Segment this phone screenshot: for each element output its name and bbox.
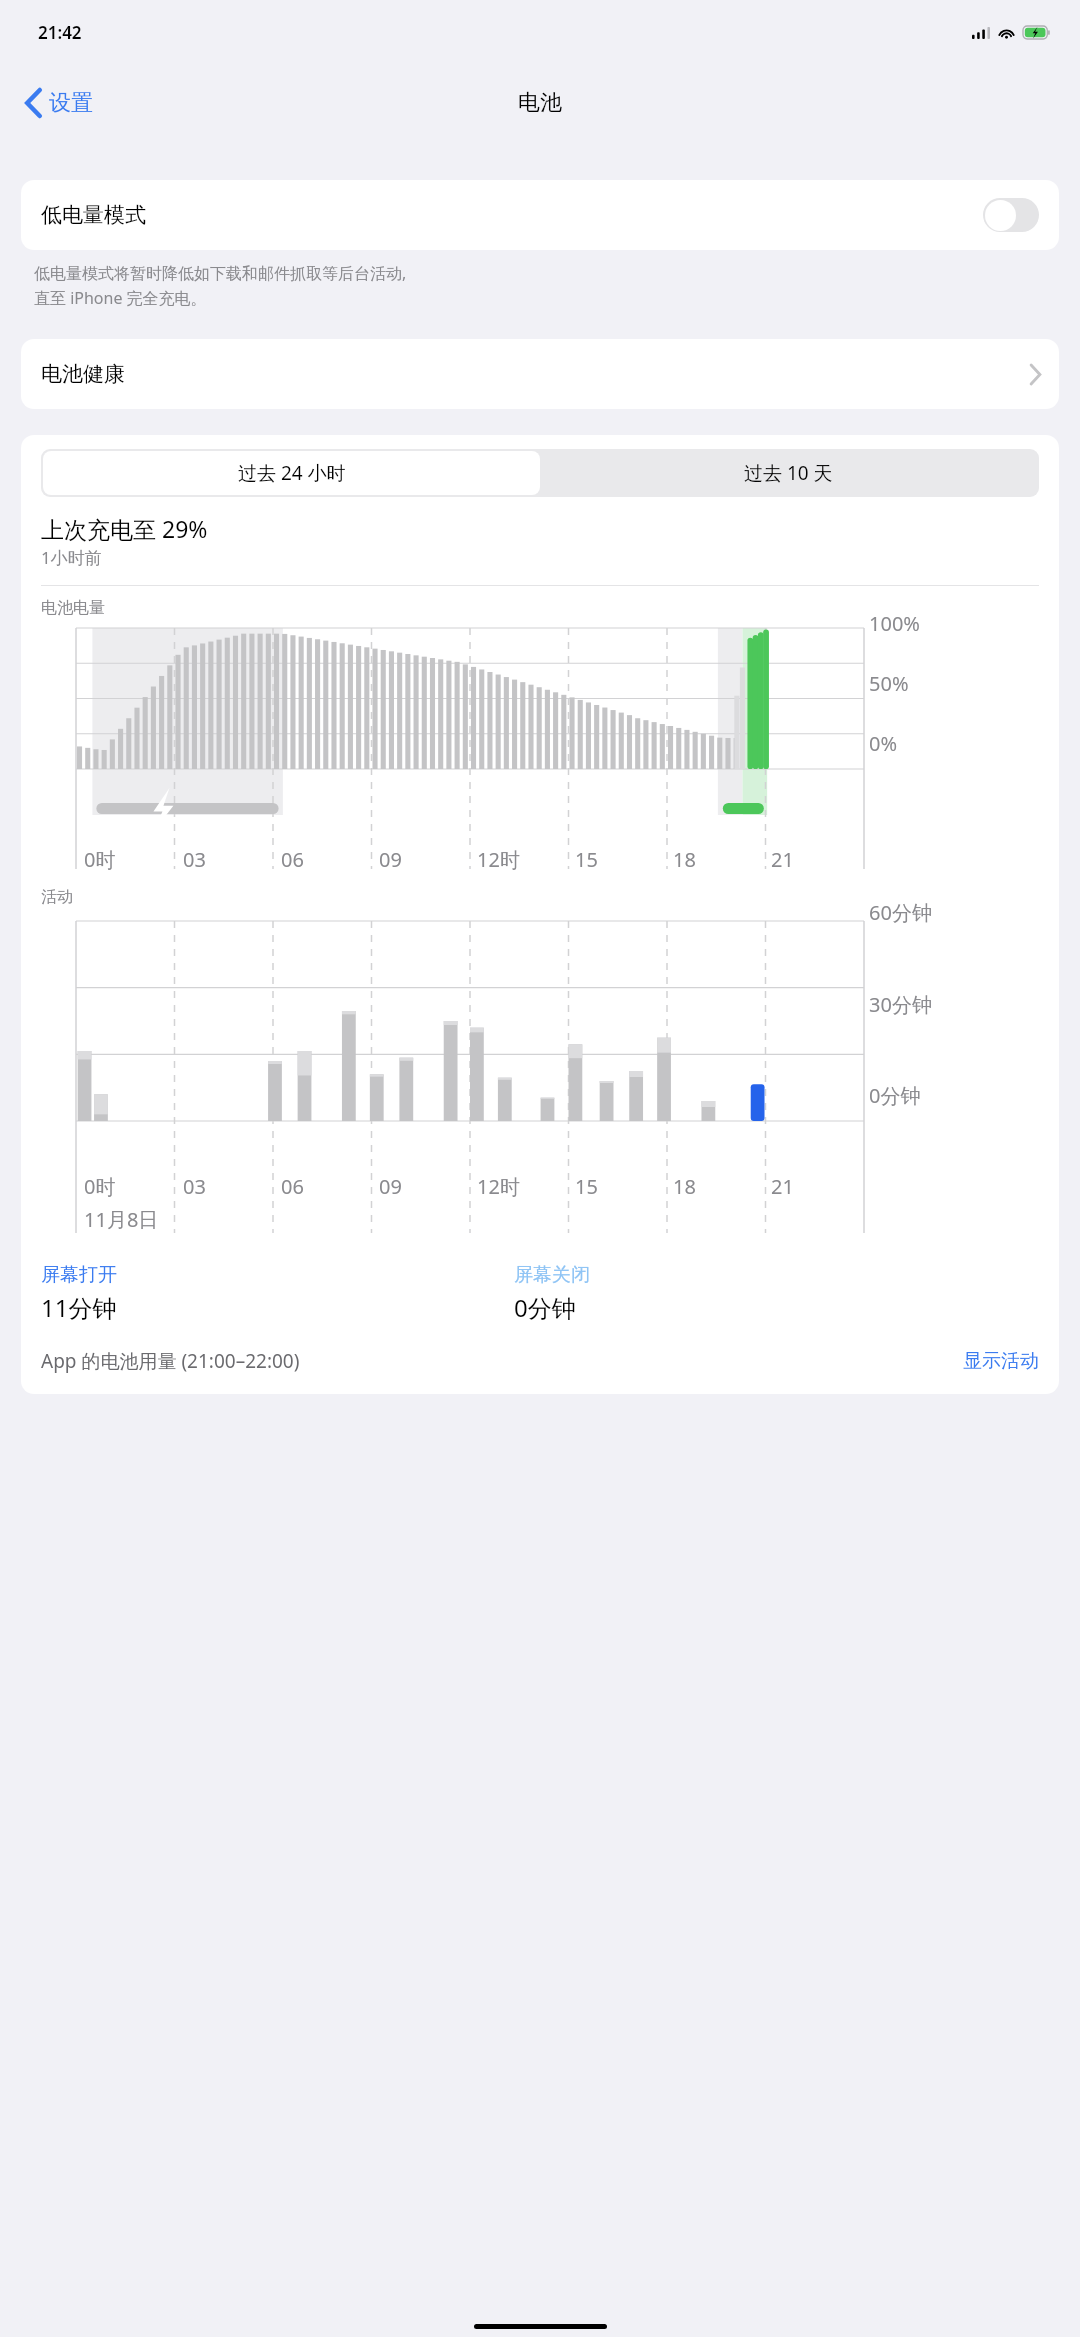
staticText: 21 <box>771 1173 794 1200</box>
staticText: 21 <box>771 846 794 873</box>
staticText: App 的电池用量 (21:00–22:00) <box>41 1348 300 1374</box>
staticText: 1小时前 <box>41 546 102 569</box>
button[interactable]: 屏幕打开 <box>41 1263 514 1324</box>
staticText: 屏幕关闭 <box>514 1263 590 1287</box>
button[interactable]: 低电量模式 <box>21 180 1059 250</box>
staticText: 活动 <box>41 887 73 907</box>
staticText: 过去 10 天 <box>744 460 833 486</box>
button[interactable]: 电池健康 <box>21 339 1059 409</box>
staticText: 09 <box>379 1173 402 1200</box>
staticText: 0分钟 <box>869 1082 921 1109</box>
staticText: 50% <box>869 670 909 697</box>
staticText: 30分钟 <box>869 991 932 1018</box>
staticText: 11分钟 <box>41 1291 117 1324</box>
staticText: 电池健康 <box>41 361 125 387</box>
button[interactable]: 屏幕关闭 <box>514 1263 1059 1324</box>
staticText: 06 <box>281 1173 304 1200</box>
staticText: 12时 <box>477 846 520 873</box>
staticText: 设置 <box>49 89 93 117</box>
staticText: 低电量模式将暂时降低如下载和邮件抓取等后台活动, 直至 iPhone 完全充电。 <box>34 262 407 309</box>
staticText: 18 <box>673 846 696 873</box>
button[interactable]: 过去 10 天 <box>540 451 1037 495</box>
staticText: 60分钟 <box>869 899 932 926</box>
staticText: 屏幕打开 <box>41 1263 117 1287</box>
staticText: 18 <box>673 1173 696 1200</box>
staticText: 12时 <box>477 1173 520 1200</box>
staticText: 03 <box>183 846 206 873</box>
button[interactable]: 显示活动 <box>963 1349 1039 1373</box>
staticText: 上次充电至 29% <box>41 513 208 544</box>
staticText: 0时 <box>84 846 116 873</box>
button[interactable]: 过去 24 小时 <box>43 451 540 495</box>
staticText: 03 <box>183 1173 206 1200</box>
button[interactable]: 设置 <box>18 83 101 123</box>
staticText: 15 <box>575 1173 598 1200</box>
staticText: 0% <box>869 730 898 757</box>
staticText: 过去 24 小时 <box>238 460 346 486</box>
staticText: 09 <box>379 846 402 873</box>
staticText: 低电量模式 <box>41 202 146 228</box>
staticText: 100% <box>869 610 920 637</box>
staticText: 0分钟 <box>514 1291 576 1324</box>
staticText: 06 <box>281 846 304 873</box>
staticText: 电池电量 <box>41 598 105 618</box>
staticText: 21:42 <box>38 21 82 44</box>
staticText: 11月8日 <box>84 1206 159 1233</box>
staticText: 电池 <box>518 89 562 117</box>
staticText: 15 <box>575 846 598 873</box>
staticText: 0时 <box>84 1173 116 1200</box>
